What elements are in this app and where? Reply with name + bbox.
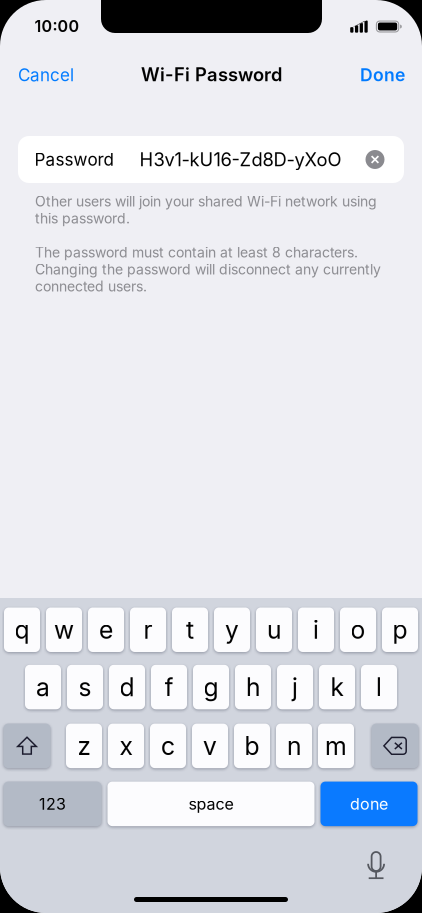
staticText: space: [188, 794, 233, 814]
button[interactable]: c: [150, 724, 186, 768]
staticText: 123: [39, 794, 66, 814]
staticText: Cancel: [18, 65, 74, 85]
button[interactable]: h: [235, 665, 271, 709]
staticText: Password: [34, 149, 113, 170]
staticText: n: [287, 731, 301, 761]
staticText: h: [246, 672, 260, 702]
button[interactable]: n: [276, 724, 312, 768]
staticText: b: [244, 731, 259, 761]
staticText: e: [99, 615, 113, 645]
staticText: g: [203, 672, 218, 702]
button[interactable]: m: [318, 724, 354, 768]
button[interactable]: r: [130, 607, 166, 652]
button[interactable]: a: [25, 665, 61, 709]
staticText: x: [119, 731, 132, 761]
button[interactable]: o: [340, 607, 376, 652]
staticText: Wi-Fi Password: [141, 63, 282, 86]
button[interactable]: p: [382, 607, 418, 652]
button[interactable]: x: [108, 724, 144, 768]
button[interactable]: Done: [345, 53, 405, 97]
button[interactable]: l: [361, 665, 397, 709]
staticText: d: [119, 672, 134, 702]
staticText: u: [267, 615, 281, 645]
button[interactable]: z: [66, 724, 102, 768]
staticText: j: [292, 672, 298, 702]
staticText: p: [392, 615, 407, 645]
staticText: Done: [360, 64, 405, 86]
button[interactable]: g: [193, 665, 229, 709]
staticText: k: [330, 672, 343, 702]
button[interactable]: space: [107, 782, 314, 826]
staticText: c: [161, 731, 175, 761]
button[interactable]: u: [256, 607, 292, 652]
staticText: 10:00: [34, 17, 79, 36]
staticText: Other users will join your shared Wi-Fi …: [35, 193, 377, 227]
staticText: r: [143, 615, 152, 645]
button[interactable]: y: [214, 607, 250, 652]
button[interactable]: b: [234, 724, 270, 768]
button[interactable]: Delete: [371, 724, 418, 768]
staticText: v: [203, 731, 217, 761]
button[interactable]: Clear text: [358, 136, 392, 183]
staticText: f: [164, 672, 173, 702]
button[interactable]: q: [4, 607, 40, 652]
staticText: i: [313, 615, 319, 645]
staticText: s: [78, 672, 91, 702]
button[interactable]: Dictate: [366, 851, 386, 881]
staticText: t: [186, 615, 194, 645]
button[interactable]: e: [88, 607, 124, 652]
button[interactable]: f: [151, 665, 187, 709]
button[interactable]: v: [192, 724, 228, 768]
staticText: done: [350, 794, 388, 814]
button[interactable]: Shift: [3, 724, 50, 768]
button[interactable]: w: [46, 607, 82, 652]
button[interactable]: j: [277, 665, 313, 709]
staticText: q: [14, 615, 29, 645]
staticText: y: [225, 615, 239, 645]
button[interactable]: k: [319, 665, 355, 709]
button[interactable]: 123: [3, 782, 101, 826]
staticText: The password must contain at least 8 cha…: [35, 244, 381, 295]
staticText: z: [77, 731, 90, 761]
staticText: H3v1-kU16-Zd8D-yXoO: [139, 148, 341, 170]
staticText: w: [54, 615, 74, 645]
staticText: m: [325, 731, 347, 761]
staticText: l: [376, 672, 382, 702]
button[interactable]: Cancel: [18, 53, 92, 97]
button[interactable]: d: [109, 665, 145, 709]
staticText: a: [36, 672, 50, 702]
staticText: o: [350, 615, 365, 645]
button[interactable]: t: [172, 607, 208, 652]
button[interactable]: done: [320, 782, 417, 826]
button[interactable]: s: [67, 665, 103, 709]
button[interactable]: i: [298, 607, 334, 652]
